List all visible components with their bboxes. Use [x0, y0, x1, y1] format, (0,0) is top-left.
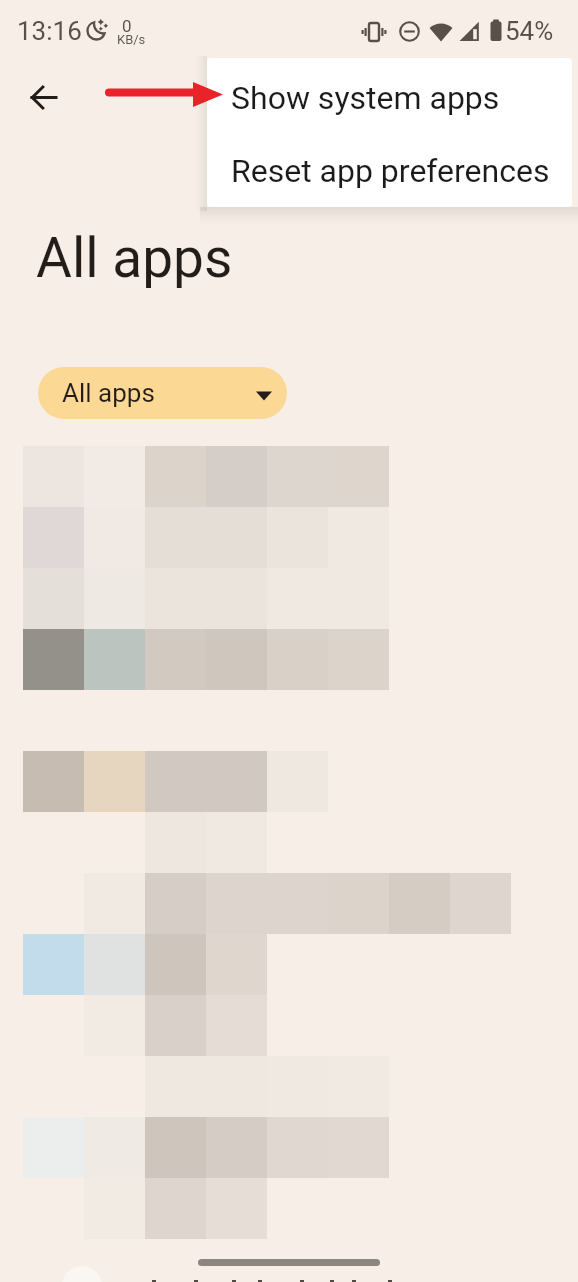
staticText: 0	[122, 16, 132, 36]
button[interactable]: Reset app preferences	[207, 134, 572, 207]
button[interactable]: Back	[20, 73, 68, 121]
staticText: 13:16	[17, 16, 82, 46]
staticText: KB/s	[117, 32, 146, 47]
staticText: Reset app preferences	[231, 152, 550, 190]
staticText: 54%	[505, 16, 554, 46]
staticText: All apps	[62, 378, 155, 408]
button[interactable]: Show system apps	[207, 60, 572, 135]
staticText: Show system apps	[231, 79, 500, 117]
staticText: All apps	[36, 226, 233, 290]
button[interactable]: All apps	[38, 367, 287, 419]
